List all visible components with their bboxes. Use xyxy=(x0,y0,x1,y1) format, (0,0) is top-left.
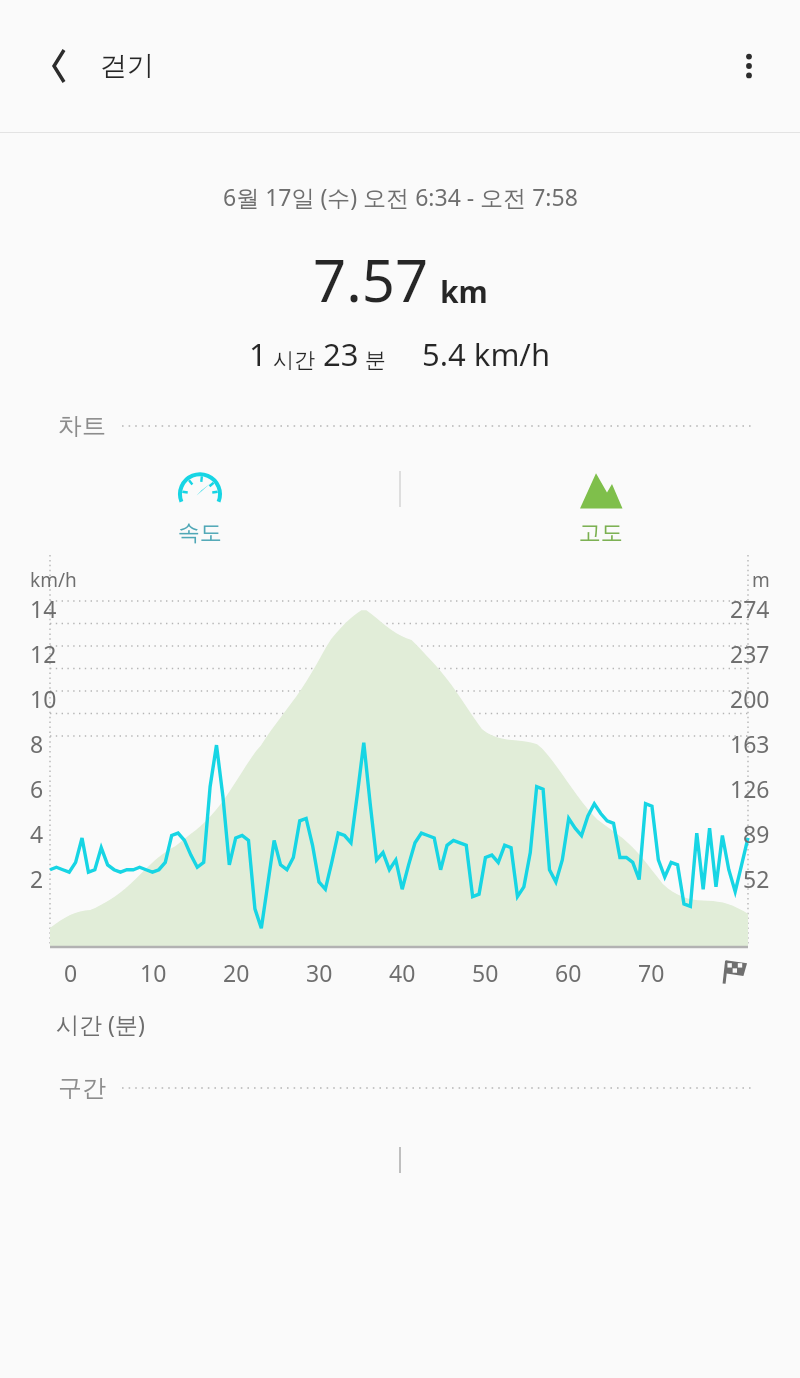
other: Finish xyxy=(721,957,749,985)
staticText: 6월 17일 (수) 오전 6:34 - 오전 7:58 xyxy=(223,181,578,212)
staticText: 속도 xyxy=(178,519,222,547)
staticText: 163 xyxy=(730,728,770,759)
staticText: 분 xyxy=(365,347,386,373)
staticText: 126 xyxy=(730,773,770,804)
staticText: 구간 xyxy=(58,1073,106,1103)
staticText: 237 xyxy=(730,638,770,669)
staticText: 70 xyxy=(638,957,665,988)
staticText: 10 xyxy=(30,683,57,714)
staticText: 7.57 xyxy=(313,240,429,319)
staticText: 20 xyxy=(223,957,250,988)
staticText: 30 xyxy=(306,957,333,988)
button[interactable]: 고도 xyxy=(548,463,654,553)
staticText: 50 xyxy=(472,957,499,988)
staticText: 10 xyxy=(140,957,167,988)
staticText: km xyxy=(440,271,488,312)
staticText: 23 xyxy=(323,333,359,375)
staticText: 시간 xyxy=(273,347,315,373)
staticText: 2 xyxy=(30,863,44,894)
staticText: 차트 xyxy=(58,411,106,441)
staticText: 4 xyxy=(30,818,44,849)
staticText: 8 xyxy=(30,728,44,759)
staticText: 6 xyxy=(30,773,44,804)
staticText: 60 xyxy=(555,957,582,988)
staticText: 14 xyxy=(30,593,57,624)
staticText: 274 xyxy=(730,593,770,624)
staticText: 12 xyxy=(30,638,57,669)
button[interactable]: Back xyxy=(30,37,88,95)
staticText: km/h xyxy=(30,567,77,593)
staticText: 52 xyxy=(743,863,770,894)
staticText: 시간 (분) xyxy=(56,1008,145,1039)
staticText: m xyxy=(752,567,770,593)
staticText: 5.4 km/h xyxy=(422,333,551,375)
staticText: 89 xyxy=(743,818,770,849)
button[interactable]: More options xyxy=(722,39,776,93)
staticText: 1 xyxy=(249,333,267,375)
staticText: 40 xyxy=(389,957,416,988)
staticText: 200 xyxy=(730,683,770,714)
staticText: 고도 xyxy=(579,519,623,547)
button[interactable]: 속도 xyxy=(147,463,253,553)
staticText: 걷기 xyxy=(100,49,154,83)
staticText: 0 xyxy=(64,957,78,988)
